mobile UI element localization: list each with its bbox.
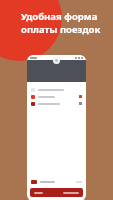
button[interactable]: Профиль: [53, 57, 60, 64]
staticText: Удобная форма: [21, 10, 98, 23]
staticText: оплаты поездок: [21, 23, 101, 36]
button[interactable]: [31, 86, 82, 93]
button[interactable]: [31, 177, 82, 186]
button[interactable]: [31, 100, 82, 107]
button[interactable]: [31, 93, 82, 100]
button[interactable]: [30, 188, 83, 197]
